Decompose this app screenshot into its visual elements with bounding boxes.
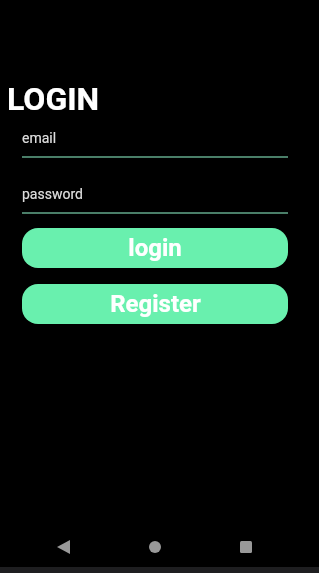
staticText: password [22, 186, 83, 202]
button[interactable]: email [22, 130, 288, 158]
staticText: login [128, 234, 182, 262]
button[interactable]: Recent apps [228, 529, 264, 565]
button[interactable]: Home [137, 529, 173, 565]
button[interactable]: password [22, 186, 288, 214]
button[interactable]: Back [45, 529, 81, 565]
button[interactable]: login [22, 228, 288, 268]
staticText: LOGIN [7, 80, 100, 118]
staticText: email [22, 130, 57, 146]
staticText: Register [110, 290, 201, 318]
button[interactable]: Register [22, 284, 288, 324]
